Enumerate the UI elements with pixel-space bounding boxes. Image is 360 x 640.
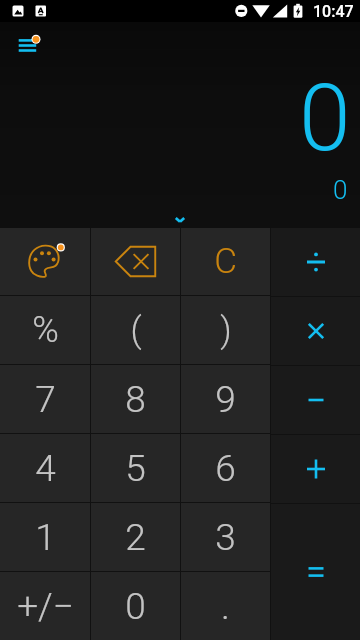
- button[interactable]: Multiply: [271, 297, 360, 365]
- button[interactable]: Add: [271, 435, 360, 503]
- staticText: 10:47: [313, 2, 354, 21]
- button[interactable]: Menu: [10, 34, 44, 56]
- button[interactable]: 8: [91, 365, 180, 433]
- button[interactable]: Equals: [271, 504, 360, 640]
- button[interactable]: 4: [0, 434, 90, 502]
- button[interactable]: Backspace: [91, 228, 180, 295]
- button[interactable]: Expand history: [163, 206, 197, 228]
- button[interactable]: 7: [0, 365, 90, 433]
- staticText: +/−: [17, 585, 74, 628]
- staticText: 0: [299, 64, 351, 173]
- button[interactable]: Palette: [0, 228, 90, 295]
- button[interactable]: Subtract: [271, 366, 360, 434]
- button[interactable]: C: [181, 228, 270, 295]
- staticText: 1: [35, 516, 56, 559]
- button[interactable]: 6: [181, 434, 270, 502]
- staticText: 3: [215, 516, 236, 559]
- staticText: 7: [35, 378, 56, 421]
- button[interactable]: +/−: [0, 572, 90, 640]
- button[interactable]: Divide: [271, 228, 360, 296]
- button[interactable]: ): [181, 296, 270, 364]
- staticText: C: [214, 241, 237, 282]
- staticText: (: [130, 310, 142, 351]
- staticText: 4: [35, 447, 56, 490]
- staticText: ): [220, 310, 232, 351]
- staticText: 6: [215, 447, 236, 490]
- staticText: %: [32, 309, 59, 351]
- staticText: 9: [215, 378, 236, 421]
- button[interactable]: 1: [0, 503, 90, 571]
- button[interactable]: %: [0, 296, 90, 364]
- staticText: 8: [125, 378, 146, 421]
- staticText: .: [221, 585, 230, 628]
- button[interactable]: (: [91, 296, 180, 364]
- button[interactable]: 9: [181, 365, 270, 433]
- staticText: 2: [125, 516, 146, 559]
- button[interactable]: 5: [91, 434, 180, 502]
- button[interactable]: 3: [181, 503, 270, 571]
- staticText: 5: [125, 447, 146, 490]
- button[interactable]: 0: [91, 572, 180, 640]
- button[interactable]: 2: [91, 503, 180, 571]
- staticText: 0: [333, 175, 348, 205]
- staticText: 0: [125, 585, 146, 628]
- button[interactable]: .: [181, 572, 270, 640]
